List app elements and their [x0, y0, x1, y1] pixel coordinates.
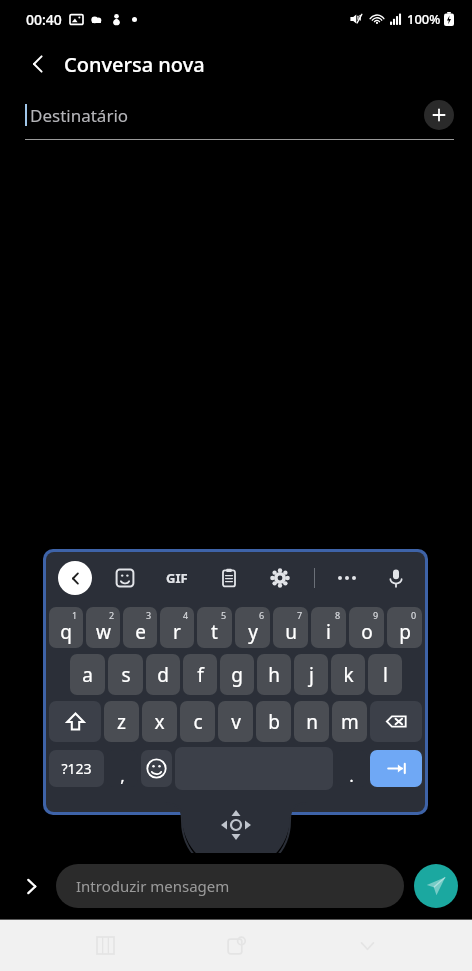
- button[interactable]: Backspace: [370, 701, 422, 742]
- button[interactable]: l: [368, 654, 402, 695]
- button[interactable]: x: [142, 701, 177, 742]
- staticText: 0: [411, 609, 417, 621]
- button[interactable]: Emoji: [141, 750, 172, 787]
- button[interactable]: i: [311, 607, 346, 648]
- button[interactable]: e: [123, 607, 157, 648]
- button[interactable]: h: [257, 654, 291, 695]
- staticText: w: [96, 619, 111, 645]
- button[interactable]: Back: [341, 919, 393, 971]
- staticText: ?123: [61, 759, 92, 778]
- button[interactable]: Shift: [49, 701, 101, 742]
- staticText: n: [306, 709, 318, 735]
- staticText: m: [341, 709, 359, 735]
- button[interactable]: Recents: [79, 919, 131, 971]
- button[interactable]: g: [220, 654, 254, 695]
- staticText: r: [173, 619, 181, 645]
- button[interactable]: d: [146, 654, 180, 695]
- button[interactable]: Clipboard: [212, 561, 246, 595]
- staticText: i: [326, 619, 331, 645]
- staticText: 00:40: [26, 10, 62, 29]
- button[interactable]: m: [332, 701, 367, 742]
- button[interactable]: p: [387, 607, 422, 648]
- button[interactable]: Expand options: [14, 869, 48, 903]
- button[interactable]: a: [70, 654, 105, 695]
- button[interactable]: q: [49, 607, 83, 648]
- button[interactable]: Introduzir mensagem: [56, 864, 404, 908]
- staticText: t: [211, 619, 218, 645]
- staticText: x: [154, 709, 165, 735]
- staticText: 4: [183, 609, 189, 621]
- button[interactable]: s: [108, 654, 143, 695]
- staticText: v: [231, 709, 241, 735]
- button[interactable]: .: [336, 750, 367, 787]
- button[interactable]: f: [183, 654, 217, 695]
- staticText: h: [268, 662, 280, 688]
- staticText: 3: [146, 609, 152, 621]
- button[interactable]: ,: [107, 750, 138, 787]
- button[interactable]: Enter: [370, 750, 422, 787]
- button[interactable]: b: [256, 701, 291, 742]
- staticText: 8: [335, 609, 341, 621]
- button[interactable]: More options: [332, 563, 362, 593]
- staticText: 1: [72, 609, 78, 621]
- button[interactable]: Settings: [263, 561, 297, 595]
- staticText: b: [268, 709, 280, 735]
- button[interactable]: Voice input: [379, 561, 413, 595]
- staticText: d: [157, 662, 169, 688]
- staticText: j: [309, 662, 314, 688]
- button[interactable]: u: [273, 607, 308, 648]
- staticText: k: [343, 662, 354, 688]
- button[interactable]: r: [160, 607, 194, 648]
- staticText: ,: [120, 764, 125, 787]
- button[interactable]: GIF: [159, 560, 195, 596]
- button[interactable]: c: [180, 701, 215, 742]
- button[interactable]: z: [104, 701, 139, 742]
- staticText: Conversa nova: [64, 51, 205, 78]
- button[interactable]: Stickers: [108, 561, 142, 595]
- staticText: u: [285, 619, 297, 645]
- staticText: 5: [221, 609, 227, 621]
- staticText: s: [121, 662, 131, 688]
- button[interactable]: Send: [414, 864, 458, 908]
- staticText: o: [361, 619, 373, 645]
- button[interactable]: n: [294, 701, 329, 742]
- button[interactable]: k: [331, 654, 365, 695]
- staticText: 2: [109, 609, 115, 621]
- button[interactable]: Back: [16, 42, 60, 86]
- button[interactable]: w: [86, 607, 120, 648]
- staticText: e: [135, 619, 146, 645]
- button[interactable]: Collapse toolbar: [58, 561, 92, 595]
- staticText: g: [231, 662, 243, 688]
- button[interactable]: Add recipient: [424, 100, 454, 130]
- staticText: 9: [373, 609, 379, 621]
- staticText: y: [248, 619, 258, 645]
- staticText: Destinatário: [30, 104, 129, 127]
- staticText: z: [117, 709, 126, 735]
- staticText: q: [60, 619, 72, 645]
- staticText: l: [383, 662, 388, 688]
- button[interactable]: Home: [210, 919, 262, 971]
- button[interactable]: o: [349, 607, 384, 648]
- staticText: p: [399, 619, 411, 645]
- staticText: f: [197, 662, 204, 688]
- button[interactable]: j: [294, 654, 328, 695]
- button[interactable]: ?123: [49, 750, 104, 787]
- staticText: GIF: [166, 569, 188, 587]
- staticText: c: [193, 709, 203, 735]
- button[interactable]: y: [235, 607, 270, 648]
- staticText: a: [82, 662, 93, 688]
- staticText: 7: [297, 609, 303, 621]
- staticText: Introduzir mensagem: [76, 876, 230, 896]
- staticText: .: [349, 764, 354, 787]
- button[interactable]: t: [197, 607, 232, 648]
- staticText: 6: [259, 609, 265, 621]
- staticText: 100%: [407, 10, 441, 28]
- button[interactable]: v: [218, 701, 253, 742]
